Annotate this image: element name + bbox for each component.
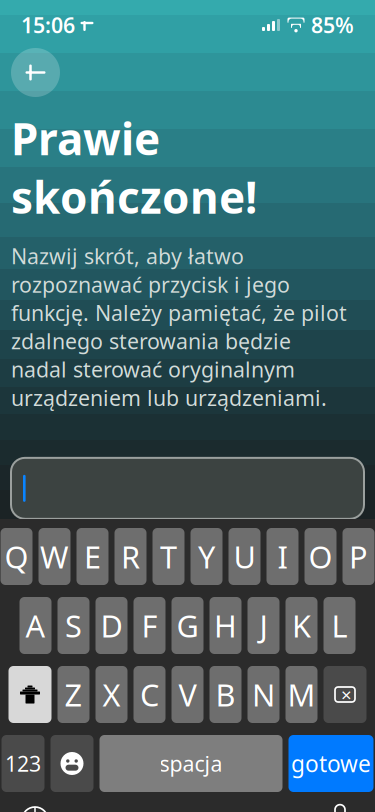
button[interactable]: C bbox=[133, 666, 165, 723]
staticText: × bbox=[341, 682, 352, 707]
staticText: H bbox=[214, 605, 237, 646]
button[interactable]: M bbox=[285, 666, 317, 723]
staticText: I bbox=[277, 536, 287, 577]
staticText: spacja bbox=[159, 749, 222, 778]
staticText: S bbox=[65, 605, 82, 646]
staticText: U bbox=[233, 536, 255, 577]
button[interactable]: G bbox=[171, 597, 203, 654]
button[interactable]: S bbox=[57, 597, 89, 654]
staticText: X bbox=[102, 674, 120, 715]
staticText: A bbox=[25, 605, 45, 646]
button[interactable]: Nazwa skrótu bbox=[11, 458, 364, 519]
button[interactable]: spacja bbox=[99, 735, 282, 792]
button[interactable]: V bbox=[171, 666, 203, 723]
button[interactable]: Zmień język klawiatury bbox=[13, 800, 57, 812]
staticText: K bbox=[292, 605, 311, 646]
button[interactable]: 123 bbox=[1, 735, 44, 792]
button[interactable]: Emoji bbox=[50, 735, 93, 792]
button[interactable]: I bbox=[266, 528, 298, 585]
staticText: Z bbox=[64, 674, 82, 715]
staticText: P bbox=[349, 536, 368, 577]
button[interactable]: U bbox=[228, 528, 260, 585]
button[interactable]: B bbox=[209, 666, 241, 723]
button[interactable]: gotowe bbox=[288, 735, 373, 792]
staticText: Q bbox=[4, 536, 28, 577]
button[interactable]: P bbox=[342, 528, 374, 585]
button[interactable]: F bbox=[133, 597, 165, 654]
staticText: gotowe bbox=[291, 748, 371, 778]
button[interactable]: K bbox=[285, 597, 317, 654]
staticText: O bbox=[308, 536, 332, 577]
staticText: N bbox=[252, 674, 275, 715]
staticText: J bbox=[259, 605, 267, 646]
staticText: Y bbox=[198, 536, 215, 577]
staticText: C bbox=[140, 674, 159, 715]
button[interactable]: X bbox=[95, 666, 127, 723]
button[interactable]: Q bbox=[0, 528, 32, 585]
staticText: R bbox=[121, 536, 140, 577]
staticText: L bbox=[331, 605, 347, 646]
button[interactable]: Usuń znak bbox=[323, 666, 366, 723]
staticText: T bbox=[160, 536, 177, 577]
button[interactable]: Wstecz bbox=[11, 48, 60, 97]
staticText: E bbox=[84, 536, 101, 577]
button[interactable]: J bbox=[247, 597, 279, 654]
staticText: 15:06 bbox=[21, 11, 75, 39]
staticText: F bbox=[141, 605, 157, 646]
staticText: 85% bbox=[311, 11, 354, 39]
staticText: W bbox=[40, 536, 69, 577]
button[interactable]: Shift bbox=[8, 666, 51, 723]
button[interactable]: Z bbox=[57, 666, 89, 723]
button[interactable]: O bbox=[304, 528, 336, 585]
staticText: B bbox=[215, 674, 235, 715]
button[interactable]: D bbox=[95, 597, 127, 654]
staticText: D bbox=[100, 605, 122, 646]
staticText: Nazwij skrót, aby łatwo rozpoznawać przy… bbox=[11, 242, 347, 412]
button[interactable]: W bbox=[38, 528, 70, 585]
button[interactable]: L bbox=[323, 597, 355, 654]
button[interactable]: T bbox=[152, 528, 184, 585]
staticText: M bbox=[287, 674, 315, 715]
button[interactable]: Dyktowanie bbox=[318, 800, 362, 812]
staticText: Prawie skończone! bbox=[11, 109, 257, 226]
staticText: G bbox=[176, 605, 198, 646]
button[interactable]: H bbox=[209, 597, 241, 654]
button[interactable]: Y bbox=[190, 528, 222, 585]
staticText: V bbox=[178, 674, 196, 715]
button[interactable]: N bbox=[247, 666, 279, 723]
button[interactable]: E bbox=[76, 528, 108, 585]
button[interactable]: A bbox=[19, 597, 51, 654]
staticText: 123 bbox=[5, 749, 41, 778]
button[interactable]: R bbox=[114, 528, 146, 585]
